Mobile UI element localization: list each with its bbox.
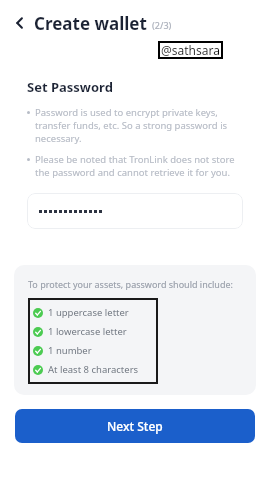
staticText: To protect your assets, password should … [28,278,233,290]
staticText: At least 8 characters [48,363,139,376]
staticText: 1 uppercase letter [48,306,129,319]
staticText: Password is used to encrypt private keys… [35,106,243,145]
staticText: 1 lowercase letter [48,325,127,338]
staticText: Create wallet [34,12,147,35]
button[interactable]: Back [6,9,34,37]
staticText: Please be noted that TronLink does not s… [35,153,243,179]
staticText: @sathsara [161,42,220,58]
staticText: Set Password [27,78,113,96]
staticText: Next Step [107,418,163,434]
button[interactable]: Next Step [15,409,255,443]
button[interactable] [27,193,243,229]
staticText: 1 number [48,344,92,357]
staticText: (2/3) [152,19,172,31]
